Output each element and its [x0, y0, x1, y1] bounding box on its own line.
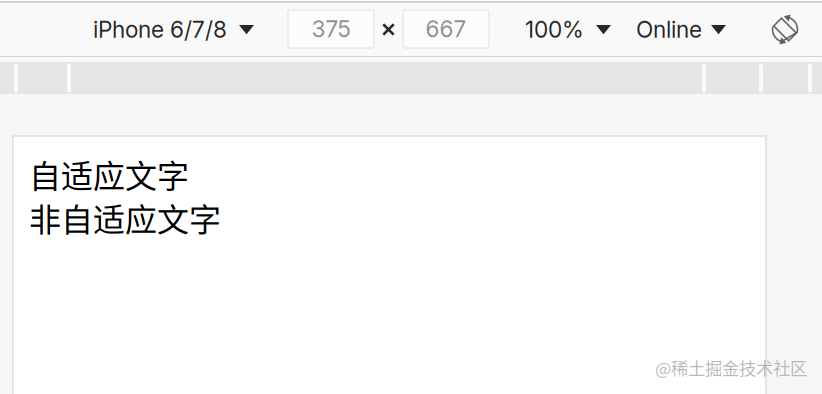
staticText: 100%	[525, 16, 584, 43]
staticText: @稀土掘金技术社区	[655, 355, 807, 380]
staticText: Online	[636, 16, 702, 43]
button[interactable]: 667	[403, 10, 489, 48]
staticText: 自适应文字	[29, 151, 189, 197]
staticText: iPhone 6/7/8	[93, 16, 227, 43]
staticText: 667	[425, 15, 466, 43]
button[interactable]: 100%	[525, 3, 626, 56]
staticText: 非自适应文字	[29, 194, 221, 241]
button[interactable]: 375	[288, 10, 374, 48]
button[interactable]: Online	[636, 3, 741, 56]
button[interactable]: Rotate device orientation	[758, 3, 812, 56]
staticText: 375	[311, 15, 350, 43]
button[interactable]: iPhone 6/7/8	[93, 3, 269, 56]
